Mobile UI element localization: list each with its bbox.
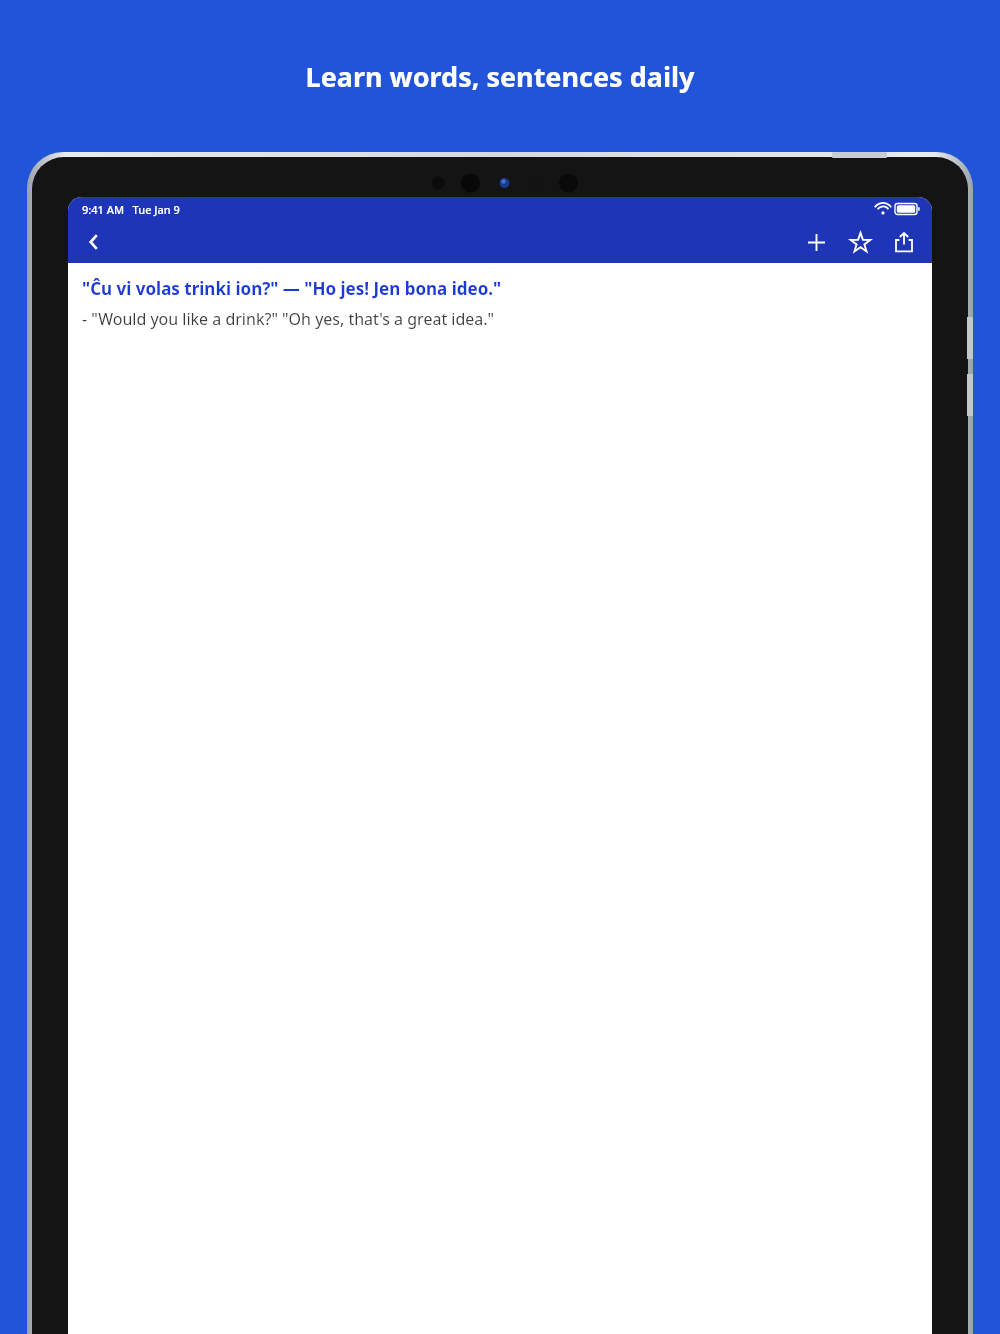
staticText: "Ĉu vi volas trinki ion?" — "Ho jes! Jen… xyxy=(82,277,502,300)
staticText: Learn words, sentences daily xyxy=(0,58,1000,95)
staticText: - "Would you like a drink?" "Oh yes, tha… xyxy=(82,308,495,330)
button[interactable]: Add xyxy=(796,222,836,262)
staticText: 9:41 AM Tue Jan 9 xyxy=(82,202,180,217)
button[interactable]: Favorite xyxy=(840,222,880,262)
button[interactable]: Back xyxy=(74,222,114,262)
button[interactable]: Share xyxy=(884,222,924,262)
